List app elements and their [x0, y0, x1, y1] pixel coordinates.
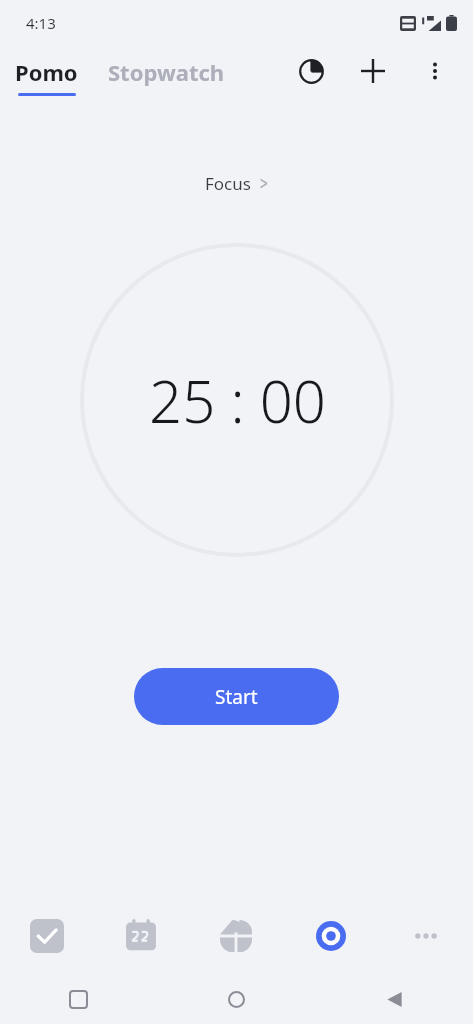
button[interactable]: Focus	[197, 168, 277, 199]
button[interactable]: Pomodoro	[283, 897, 378, 975]
staticText: 25 : 00	[149, 361, 326, 440]
button[interactable]: Stopwatch	[108, 62, 225, 92]
button[interactable]: Statistics	[291, 51, 331, 91]
button[interactable]: Recent apps	[0, 975, 157, 1024]
button[interactable]: More options	[415, 51, 455, 91]
staticText: Stopwatch	[108, 57, 225, 87]
button[interactable]: Home	[157, 975, 315, 1024]
button[interactable]: More	[378, 897, 473, 975]
button[interactable]: Calendar	[94, 897, 188, 975]
button[interactable]: Add	[353, 51, 393, 91]
button[interactable]: Habits	[188, 897, 283, 975]
button[interactable]: Tasks	[0, 897, 94, 975]
button[interactable]: Back	[315, 975, 473, 1024]
button[interactable]: Pomo	[15, 57, 78, 96]
staticText: Pomo	[15, 57, 78, 87]
staticText: 4:13	[26, 13, 56, 33]
staticText: Focus	[205, 172, 251, 195]
staticText: Start	[215, 684, 258, 710]
button[interactable]: Start	[134, 668, 339, 725]
